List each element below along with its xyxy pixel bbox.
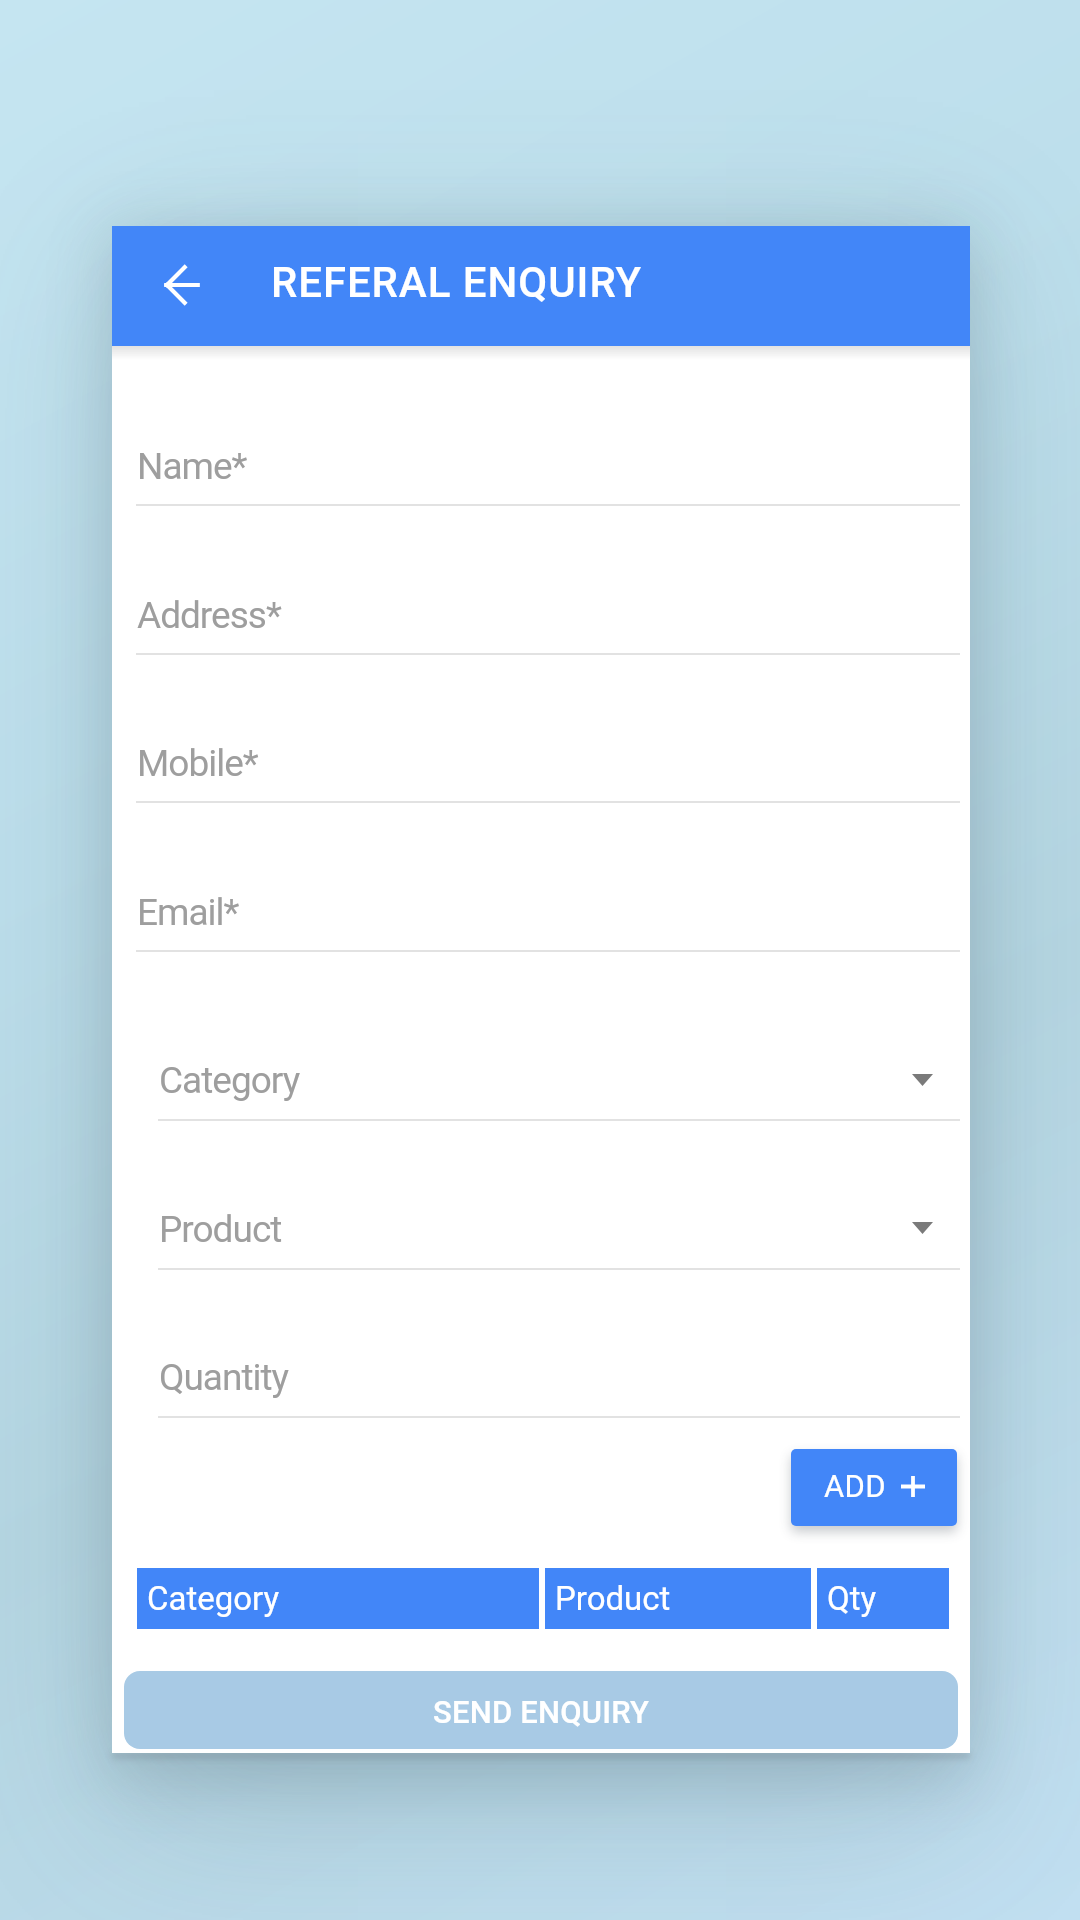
staticText: Name* bbox=[137, 445, 247, 488]
staticText: Address* bbox=[137, 594, 281, 637]
staticText: Product bbox=[159, 1208, 282, 1251]
button[interactable]: ADD bbox=[791, 1449, 957, 1526]
staticText: Product bbox=[555, 1579, 671, 1618]
button[interactable]: Name bbox=[136, 430, 960, 508]
staticText: Category bbox=[147, 1579, 280, 1618]
button[interactable]: SEND ENQUIRY bbox=[124, 1671, 958, 1749]
button[interactable]: Email bbox=[136, 876, 960, 954]
staticText: SEND ENQUIRY bbox=[433, 1694, 650, 1730]
staticText: Email* bbox=[137, 891, 239, 934]
button[interactable]: Category dropdown bbox=[158, 1044, 960, 1123]
button[interactable]: Address bbox=[136, 579, 960, 657]
button[interactable]: Product dropdown bbox=[158, 1193, 960, 1272]
staticText: ADD bbox=[824, 1468, 887, 1504]
staticText: Category bbox=[159, 1059, 300, 1102]
button[interactable]: Qty bbox=[817, 1568, 949, 1629]
staticText: REFERAL ENQUIRY bbox=[271, 258, 643, 307]
button[interactable]: Mobile bbox=[136, 727, 960, 805]
staticText: Qty bbox=[827, 1579, 877, 1618]
staticText: Mobile* bbox=[137, 742, 258, 785]
staticText: Quantity bbox=[159, 1356, 289, 1399]
button[interactable]: Back bbox=[150, 253, 214, 317]
button[interactable]: Product bbox=[545, 1568, 811, 1629]
button[interactable]: Quantity bbox=[158, 1341, 960, 1420]
button[interactable]: Category bbox=[137, 1568, 539, 1629]
